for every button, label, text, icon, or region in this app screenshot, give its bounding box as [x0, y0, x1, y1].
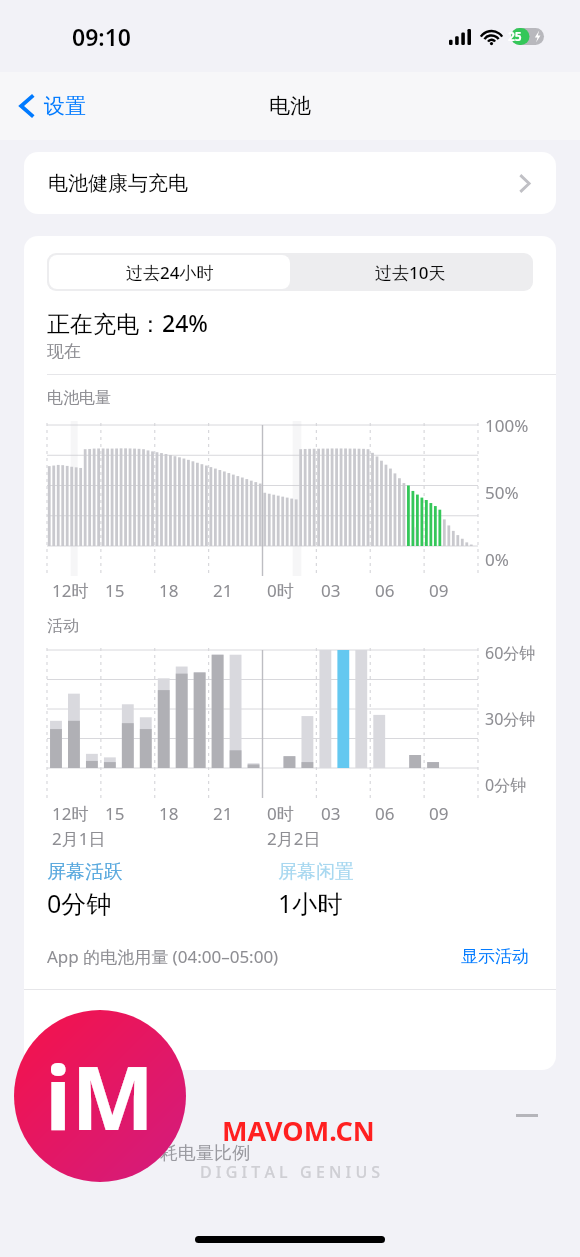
- button[interactable]: 电池健康与充电: [24, 152, 556, 214]
- staticText: D I G I T A L G E N I U S: [200, 1161, 381, 1183]
- staticText: 耗电量比例: [160, 1142, 250, 1165]
- staticText: 过去10天: [375, 261, 446, 284]
- staticText: 09:10: [72, 21, 131, 52]
- staticText: 2月1日: [52, 827, 106, 850]
- staticText: 显示活动: [461, 946, 529, 967]
- staticText: 18: [159, 802, 179, 825]
- staticText: 06: [375, 579, 395, 602]
- staticText: 09: [429, 802, 449, 825]
- staticText: 0分钟: [47, 886, 112, 920]
- staticText: 设置: [44, 93, 86, 119]
- staticText: 屏幕闲置: [278, 860, 354, 884]
- button[interactable]: 设置: [14, 87, 92, 125]
- staticText: 电池: [269, 93, 311, 119]
- staticText: 15: [105, 579, 125, 602]
- staticText: 电池健康与充电: [48, 171, 188, 196]
- staticText: 活动: [47, 616, 79, 636]
- staticText: 50%: [485, 481, 519, 503]
- staticText: 09: [429, 579, 449, 602]
- staticText: 过去24小时: [126, 261, 214, 284]
- staticText: iM: [45, 1036, 155, 1156]
- staticText: 1小时: [278, 886, 343, 920]
- staticText: 2月2日: [267, 827, 321, 850]
- staticText: MAVOM.CN: [222, 1112, 375, 1149]
- staticText: 12时: [52, 579, 89, 602]
- button[interactable]: 过去24小时: [49, 255, 290, 289]
- staticText: 0时: [267, 579, 294, 602]
- staticText: 03: [321, 579, 341, 602]
- staticText: 屏幕活跃: [47, 860, 123, 884]
- staticText: 正在充电：24%: [47, 307, 208, 338]
- staticText: 0%: [485, 548, 509, 570]
- staticText: 60分钟: [485, 642, 536, 664]
- staticText: 21: [213, 802, 233, 825]
- staticText: 现在: [47, 341, 81, 362]
- staticText: 0时: [267, 802, 294, 825]
- staticText: 15: [105, 802, 125, 825]
- staticText: 06: [375, 802, 395, 825]
- staticText: 0分钟: [485, 774, 527, 796]
- staticText: 12时: [52, 802, 89, 825]
- button[interactable]: 过去10天: [290, 255, 531, 289]
- staticText: 电池电量: [47, 388, 111, 408]
- staticText: 21: [213, 579, 233, 602]
- staticText: 100%: [485, 414, 529, 436]
- staticText: 25: [508, 28, 522, 44]
- button[interactable]: 显示活动: [457, 942, 533, 971]
- staticText: 03: [321, 802, 341, 825]
- staticText: 30分钟: [485, 708, 536, 730]
- staticText: 18: [159, 579, 179, 602]
- staticText: App 的电池用量 (04:00–05:00): [47, 945, 457, 968]
